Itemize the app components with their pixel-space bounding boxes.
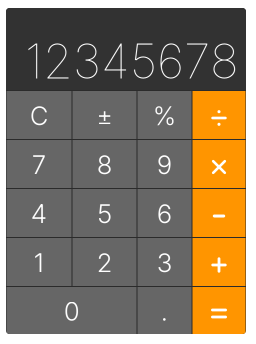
staticText: ± [96, 101, 112, 131]
button[interactable]: Equals [192, 287, 245, 334]
button[interactable]: Subtract [192, 189, 245, 237]
button[interactable]: Divide [192, 91, 245, 139]
button[interactable]: 5 [72, 189, 136, 237]
button[interactable]: 3 [137, 238, 191, 286]
button[interactable]: Multiply [192, 140, 245, 188]
button[interactable]: ± [72, 91, 136, 139]
button[interactable]: 2 [72, 238, 136, 286]
staticText: 2 [97, 248, 112, 278]
staticText: 4 [31, 199, 47, 229]
button[interactable]: 9 [137, 140, 191, 188]
button[interactable]: 6 [137, 189, 191, 237]
staticText: 7 [32, 150, 46, 180]
button[interactable]: 8 [72, 140, 136, 188]
staticText: C [30, 101, 48, 131]
staticText: 6 [157, 199, 172, 229]
button[interactable]: 0 [6, 287, 136, 334]
staticText: 5 [97, 199, 111, 229]
staticText: 9 [157, 150, 172, 180]
button[interactable]: 1 [6, 238, 71, 286]
staticText: . [161, 296, 168, 327]
staticText: 0 [64, 296, 79, 327]
button[interactable]: . [137, 287, 191, 334]
button[interactable]: C [6, 91, 71, 139]
staticText: 8 [97, 150, 112, 180]
button[interactable]: 7 [6, 140, 71, 188]
button[interactable]: Add [192, 238, 245, 286]
staticText: 12345678 [25, 32, 239, 90]
staticText: 3 [157, 248, 172, 278]
button[interactable]: 4 [6, 189, 71, 237]
staticText: 1 [34, 248, 44, 278]
button[interactable]: % [137, 91, 191, 139]
staticText: % [153, 101, 176, 131]
